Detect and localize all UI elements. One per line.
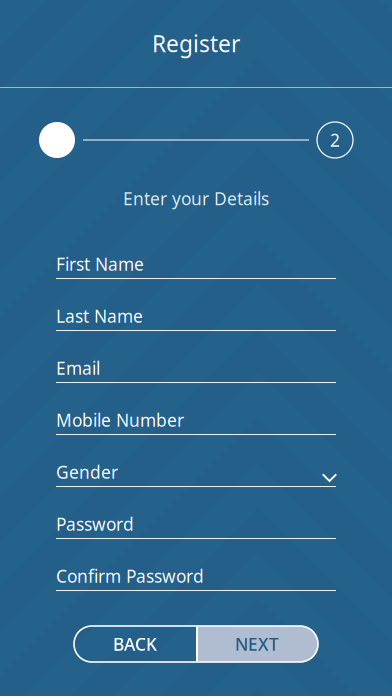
staticText: Register bbox=[152, 28, 240, 58]
staticText: Mobile Number bbox=[56, 408, 184, 431]
button[interactable]: BACK bbox=[74, 626, 196, 662]
button[interactable]: Confirm Password bbox=[56, 546, 336, 598]
button[interactable]: First Name bbox=[56, 234, 336, 286]
button[interactable]: Last Name bbox=[56, 286, 336, 338]
staticText: NEXT bbox=[235, 632, 279, 655]
staticText: Password bbox=[56, 512, 134, 535]
staticText: BACK bbox=[113, 632, 157, 655]
button[interactable]: Email bbox=[56, 338, 336, 390]
button[interactable]: NEXT bbox=[196, 626, 318, 662]
button[interactable]: Gender bbox=[56, 442, 336, 494]
staticText: 2 bbox=[330, 128, 340, 151]
button[interactable]: Mobile Number bbox=[56, 390, 336, 442]
staticText: Email bbox=[56, 356, 100, 379]
button[interactable]: Password bbox=[56, 494, 336, 546]
staticText: Enter your Details bbox=[123, 187, 269, 210]
staticText: Gender bbox=[56, 460, 118, 483]
staticText: First Name bbox=[56, 252, 144, 275]
staticText: Last Name bbox=[56, 304, 143, 327]
staticText: Confirm Password bbox=[56, 564, 204, 587]
